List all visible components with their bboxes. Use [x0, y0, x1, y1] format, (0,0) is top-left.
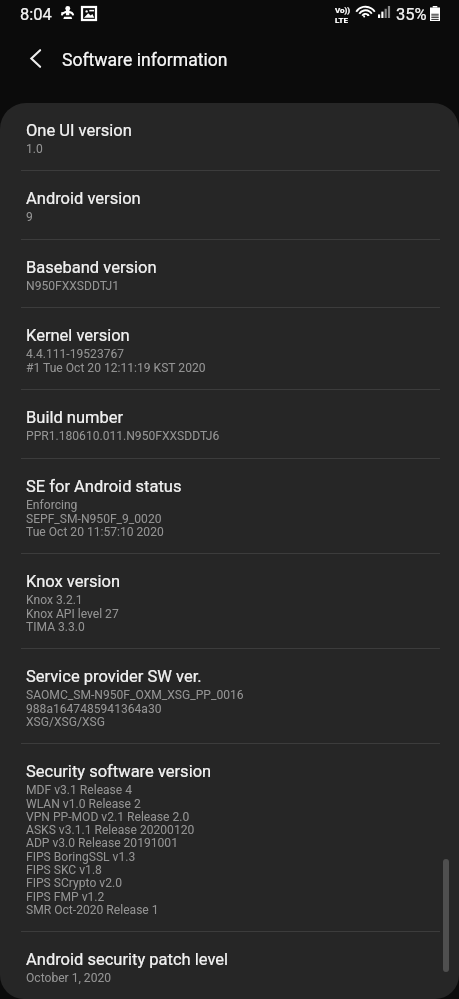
button[interactable]: Android version — [0, 171, 459, 240]
staticText: WLAN v1.0 Release 2 — [26, 797, 141, 811]
staticText: SEPF_SM-N950F_9_0020 — [26, 512, 162, 526]
button[interactable]: SE for Android status — [0, 459, 459, 554]
staticText: 8:04 — [20, 5, 52, 24]
staticText: VPN PP-MOD v2.1 Release 2.0 — [26, 810, 190, 824]
staticText: Enforcing — [26, 498, 78, 512]
staticText: One UI version — [26, 120, 132, 140]
button[interactable]: Baseband version — [0, 240, 459, 308]
staticText: 35% — [396, 5, 427, 24]
staticText: TIMA 3.3.0 — [26, 620, 85, 634]
staticText: Android security patch level — [26, 949, 229, 969]
staticText: Kernel version — [26, 325, 130, 345]
staticText: Build number — [26, 407, 124, 427]
staticText: XSG/XSG/XSG — [26, 715, 105, 729]
staticText: Tue Oct 20 11:57:10 2020 — [26, 525, 164, 539]
staticText: PPR1.180610.011.N950FXXSDDTJ6 — [26, 429, 220, 443]
staticText: Baseband version — [26, 257, 157, 277]
staticText: 4.4.111-19523767 — [26, 347, 125, 361]
staticText: Knox 3.2.1 — [26, 593, 83, 607]
button[interactable]: Knox version — [0, 554, 459, 649]
staticText: Service provider SW ver. — [26, 666, 202, 686]
staticText: ASKS v3.1.1 Release 20200120 — [26, 823, 195, 837]
button[interactable]: Service provider SW ver. — [0, 649, 459, 744]
staticText: October 1, 2020 — [26, 971, 112, 985]
button[interactable]: Security software version — [0, 744, 459, 932]
staticText: Security software version — [26, 761, 212, 781]
staticText: 1.0 — [26, 142, 43, 156]
staticText: 9 — [26, 210, 33, 224]
staticText: 988a1647485941364a30 — [26, 702, 162, 716]
button[interactable]: Build number — [0, 390, 459, 459]
button[interactable]: Android security patch level — [0, 932, 459, 999]
staticText: FIPS SKC v1.8 — [26, 863, 102, 877]
staticText: Knox API level 27 — [26, 607, 119, 621]
staticText: FIPS SCrypto v2.0 — [26, 876, 122, 890]
staticText: Android version — [26, 188, 141, 208]
staticText: N950FXXSDDTJ1 — [26, 279, 120, 293]
staticText: Knox version — [26, 571, 121, 591]
staticText: SMR Oct-2020 Release 1 — [26, 903, 159, 917]
staticText: FIPS FMP v1.2 — [26, 890, 105, 904]
staticText: MDF v3.1 Release 4 — [26, 783, 133, 797]
staticText: SAOMC_SM-N950F_OXM_XSG_PP_0016 — [26, 688, 244, 702]
staticText: Software information — [62, 49, 228, 70]
staticText: FIPS BoringSSL v1.3 — [26, 850, 136, 864]
staticText: SE for Android status — [26, 476, 182, 496]
staticText: #1 Tue Oct 20 12:11:19 KST 2020 — [26, 361, 206, 375]
button[interactable]: Kernel version — [0, 308, 459, 390]
button[interactable]: Back — [14, 37, 56, 79]
staticText: LTE — [335, 16, 348, 25]
staticText: Vo)) — [335, 6, 351, 15]
button[interactable]: One UI version — [0, 103, 459, 171]
staticText: ADP v3.0 Release 20191001 — [26, 836, 178, 850]
